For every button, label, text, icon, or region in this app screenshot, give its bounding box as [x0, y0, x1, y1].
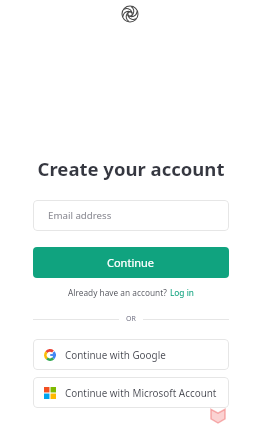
button[interactable]: Continue with Google	[33, 339, 229, 370]
staticText: Create your account	[33, 156, 229, 181]
button[interactable]: Email address	[33, 200, 229, 231]
staticText: Already have an account?	[68, 287, 167, 298]
other: OpenAI	[120, 4, 140, 24]
staticText: Continue	[107, 255, 155, 270]
staticText: Continue with Google	[65, 348, 166, 361]
button[interactable]: Continue with Microsoft Account	[33, 377, 229, 408]
staticText: Log in	[170, 287, 194, 298]
button[interactable]: Continue	[33, 247, 229, 278]
staticText: Email address	[48, 209, 112, 222]
staticText: OR	[126, 314, 136, 324]
staticText: Continue with Microsoft Account	[65, 386, 217, 399]
button[interactable]: Log in	[170, 287, 194, 298]
